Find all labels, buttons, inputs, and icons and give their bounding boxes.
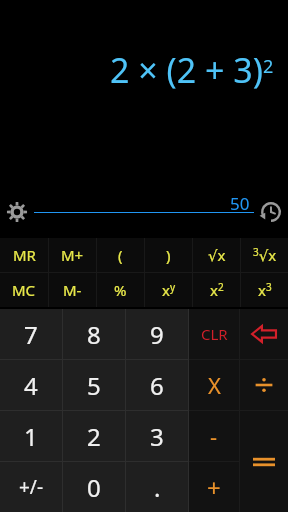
button[interactable]: Equals: [240, 411, 288, 512]
staticText: X: [208, 370, 221, 400]
button[interactable]: MC: [0, 273, 48, 307]
staticText: CLR: [201, 324, 228, 344]
button[interactable]: 3: [126, 411, 188, 461]
staticText: 8: [87, 318, 101, 351]
staticText: 7: [24, 318, 38, 351]
staticText: +: [207, 471, 221, 504]
staticText: 4: [24, 369, 38, 402]
button[interactable]: Divide: [240, 360, 288, 410]
staticText: M+: [61, 245, 84, 265]
button[interactable]: MR: [0, 238, 48, 272]
button[interactable]: +/-: [0, 462, 62, 512]
button[interactable]: %: [97, 273, 144, 307]
button[interactable]: History: [254, 186, 288, 238]
staticText: 1: [24, 420, 38, 453]
staticText: MC: [12, 280, 36, 300]
button[interactable]: 1: [0, 411, 62, 461]
button[interactable]: Backspace: [240, 309, 288, 359]
button[interactable]: (: [97, 238, 144, 272]
staticText: 6: [150, 369, 164, 402]
button[interactable]: 9: [126, 309, 188, 359]
staticText: x3: [258, 280, 272, 300]
staticText: +/-: [19, 474, 44, 500]
staticText: 3√x: [253, 245, 277, 265]
button[interactable]: 5: [63, 360, 125, 410]
button[interactable]: 4: [0, 360, 62, 410]
staticText: 9: [150, 318, 164, 351]
staticText: 0: [87, 471, 101, 504]
staticText: 3: [150, 420, 164, 453]
button[interactable]: Settings: [0, 186, 34, 238]
button[interactable]: X: [189, 360, 239, 410]
button[interactable]: -: [189, 411, 239, 461]
button[interactable]: x2: [193, 273, 240, 307]
staticText: -: [210, 421, 218, 451]
staticText: 50: [230, 192, 250, 215]
button[interactable]: 2: [63, 411, 125, 461]
button[interactable]: M+: [49, 238, 96, 272]
button[interactable]: 8: [63, 309, 125, 359]
staticText: 2 × (2 + 3)2: [110, 47, 274, 93]
button[interactable]: xy: [145, 273, 192, 307]
staticText: x2: [210, 280, 224, 300]
staticText: 2: [87, 420, 101, 453]
staticText: (: [118, 245, 123, 265]
button[interactable]: +: [189, 462, 239, 512]
staticText: M-: [63, 280, 82, 300]
button[interactable]: √x: [193, 238, 240, 272]
button[interactable]: CLR: [189, 309, 239, 359]
staticText: ): [166, 245, 171, 265]
button[interactable]: x3: [241, 273, 288, 307]
button[interactable]: 7: [0, 309, 62, 359]
staticText: √x: [208, 245, 226, 265]
button[interactable]: 6: [126, 360, 188, 410]
staticText: 5: [87, 369, 101, 402]
staticText: MR: [13, 245, 36, 265]
staticText: .: [154, 471, 161, 504]
button[interactable]: M-: [49, 273, 96, 307]
button[interactable]: .: [126, 462, 188, 512]
button[interactable]: 3√x: [241, 238, 288, 272]
button[interactable]: ): [145, 238, 192, 272]
staticText: %: [114, 280, 127, 300]
button[interactable]: 0: [63, 462, 125, 512]
staticText: xy: [162, 280, 176, 300]
